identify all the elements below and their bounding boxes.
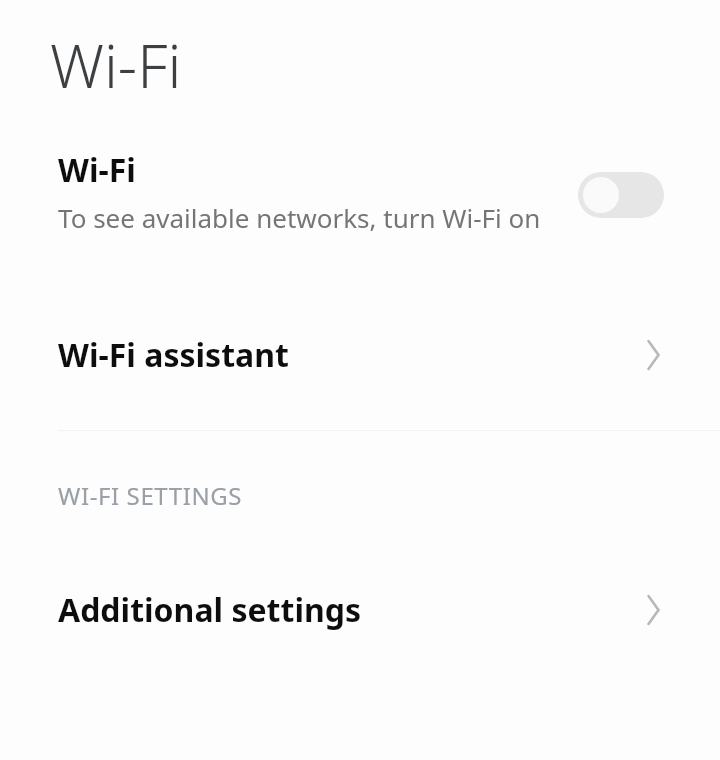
- button[interactable]: Additional settings: [0, 572, 720, 648]
- staticText: Wi-Fi: [58, 148, 136, 192]
- staticText: Wi-Fi assistant: [58, 333, 638, 377]
- staticText: Wi-Fi: [50, 24, 182, 106]
- staticText: To see available networks, turn Wi-Fi on: [58, 200, 541, 235]
- button[interactable]: Wi-Fi: [0, 130, 720, 305]
- button[interactable]: Wi-Fi toggle, off: [578, 172, 664, 218]
- staticText: Additional settings: [58, 588, 638, 632]
- button[interactable]: Wi-Fi assistant: [0, 305, 720, 405]
- staticText: WI-FI SETTINGS: [58, 479, 243, 512]
